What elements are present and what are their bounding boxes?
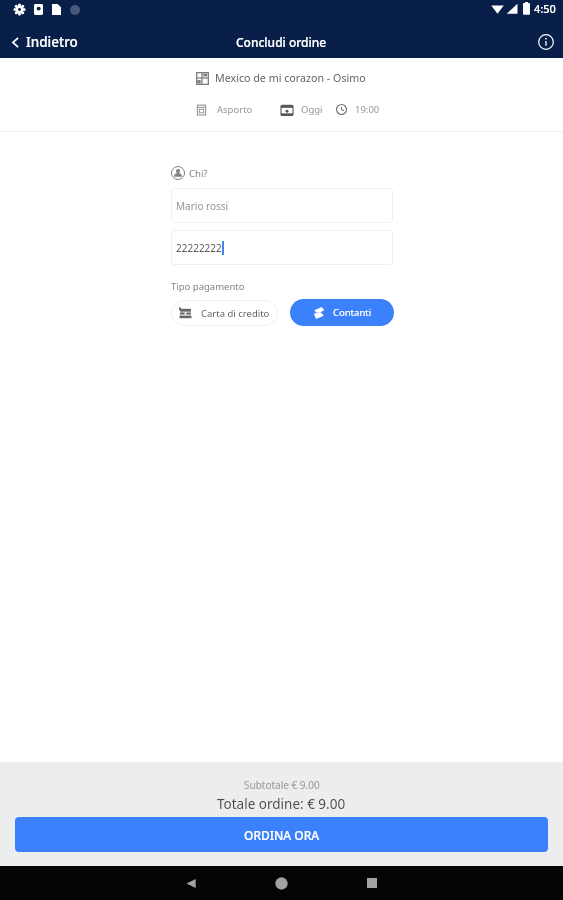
staticText: Carta di credito bbox=[201, 307, 270, 320]
button[interactable]: Informazioni bbox=[529, 28, 563, 56]
staticText: Asporto bbox=[217, 103, 253, 116]
button[interactable]: Mario rossi bbox=[171, 188, 393, 223]
staticText: 4:50 bbox=[534, 1, 556, 16]
staticText: Tipo pagamento bbox=[171, 280, 245, 293]
button[interactable]: Indietro bbox=[0, 28, 90, 56]
staticText: Totale ordine: € 9.00 bbox=[217, 795, 346, 813]
staticText: Indietro bbox=[26, 33, 78, 51]
staticText: 19:00 bbox=[355, 103, 380, 116]
button[interactable]: Home bbox=[260, 866, 302, 900]
staticText: 22222222 bbox=[176, 241, 222, 255]
staticText: Subtotale € 9.00 bbox=[244, 778, 320, 792]
staticText: Oggi bbox=[301, 103, 323, 116]
button[interactable]: Back bbox=[170, 866, 212, 900]
staticText: Concludi ordine bbox=[236, 34, 327, 50]
button[interactable]: ORDINA ORA bbox=[15, 817, 548, 852]
staticText: ORDINA ORA bbox=[244, 827, 320, 843]
staticText: Chi? bbox=[189, 167, 208, 180]
staticText: Mexico de mi corazon - Osimo bbox=[215, 71, 366, 86]
button[interactable]: Contanti bbox=[290, 299, 394, 326]
staticText: Contanti bbox=[333, 306, 372, 319]
button[interactable]: Carta di credito bbox=[171, 300, 278, 326]
button[interactable]: 22222222 bbox=[171, 230, 393, 265]
staticText: Mario rossi bbox=[176, 199, 229, 213]
button[interactable]: Recents bbox=[351, 866, 393, 900]
